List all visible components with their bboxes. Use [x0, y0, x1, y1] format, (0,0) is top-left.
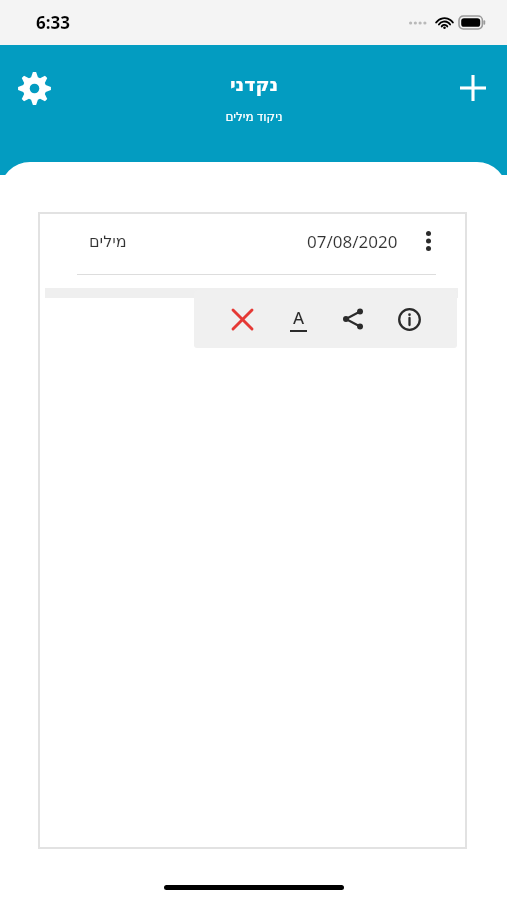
- staticText: נקדני: [230, 73, 278, 95]
- button[interactable]: Share: [332, 298, 374, 340]
- staticText: A: [293, 306, 305, 329]
- staticText: 07/08/2020: [307, 230, 398, 253]
- staticText: 6:33: [36, 11, 70, 34]
- button[interactable]: More options: [415, 228, 441, 254]
- button[interactable]: Format text: [277, 298, 319, 340]
- button[interactable]: Info: [388, 298, 430, 340]
- staticText: מילים: [89, 232, 127, 251]
- button[interactable]: Delete: [221, 298, 263, 340]
- button[interactable]: Settings: [12, 66, 56, 110]
- staticText: ניקוד מילים: [225, 108, 283, 124]
- button[interactable]: Add: [451, 66, 495, 110]
- button[interactable]: מילים: [45, 215, 457, 285]
